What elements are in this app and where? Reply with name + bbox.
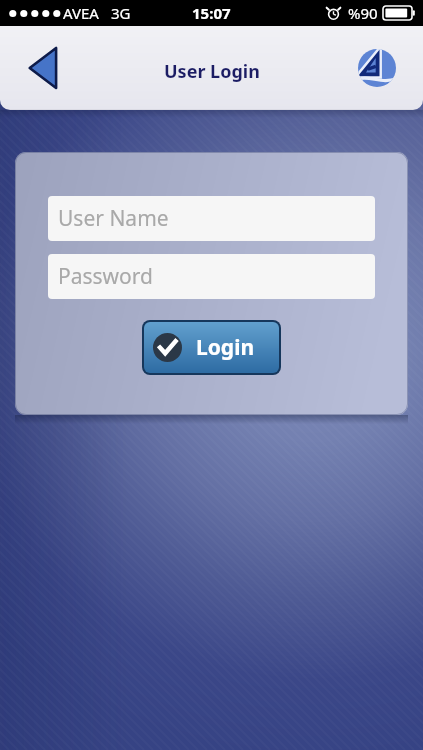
staticText: Password: [58, 262, 153, 291]
staticText: User Login: [164, 59, 260, 84]
button[interactable]: Password: [48, 254, 375, 299]
staticText: User Name: [58, 204, 169, 233]
button[interactable]: User Name: [48, 196, 375, 241]
staticText: 15:07: [192, 3, 231, 23]
staticText: Login: [196, 333, 255, 362]
button[interactable]: App logo: [358, 49, 396, 87]
staticText: AVEA: [63, 3, 99, 23]
staticText: %90: [348, 3, 378, 23]
button[interactable]: Back: [22, 46, 66, 90]
staticText: 3G: [111, 3, 131, 23]
button[interactable]: Login: [144, 322, 279, 373]
